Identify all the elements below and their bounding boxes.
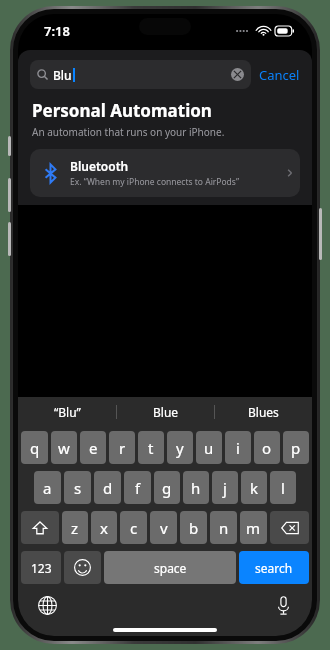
button[interactable]: Blue bbox=[117, 397, 214, 427]
staticText: d bbox=[103, 478, 113, 498]
staticText: 7:18 bbox=[44, 22, 70, 40]
button[interactable]: g bbox=[154, 471, 180, 504]
button[interactable]: h bbox=[183, 471, 209, 504]
staticText: r bbox=[119, 438, 126, 458]
button[interactable]: Cancel bbox=[251, 62, 300, 88]
staticText: g bbox=[162, 478, 172, 498]
button[interactable]: d bbox=[94, 471, 121, 504]
button[interactable]: u bbox=[196, 431, 222, 464]
staticText: Cancel bbox=[259, 66, 300, 84]
staticText: o bbox=[262, 438, 272, 458]
button[interactable]: w bbox=[51, 431, 77, 464]
button[interactable]: v bbox=[150, 511, 177, 544]
staticText: q bbox=[30, 438, 40, 458]
button[interactable]: Emoji bbox=[64, 551, 101, 584]
button[interactable]: s bbox=[64, 471, 91, 504]
staticText: Blu bbox=[53, 67, 72, 83]
button[interactable]: j bbox=[212, 471, 238, 504]
button[interactable]: “Blu” bbox=[18, 397, 116, 427]
button[interactable]: x bbox=[91, 511, 117, 544]
button[interactable]: k bbox=[241, 471, 267, 504]
button[interactable]: i bbox=[225, 431, 251, 464]
button[interactable]: Clear text bbox=[231, 68, 244, 81]
staticText: Ex. “When my iPhone connects to AirPods” bbox=[70, 176, 239, 188]
button[interactable]: Backspace bbox=[270, 511, 309, 544]
staticText: Blue bbox=[153, 404, 179, 420]
button[interactable]: a bbox=[34, 471, 61, 504]
button[interactable]: r bbox=[109, 431, 135, 464]
staticText: h bbox=[191, 478, 201, 498]
button[interactable]: space bbox=[104, 551, 236, 584]
staticText: w bbox=[58, 438, 70, 458]
button[interactable]: Bluetooth bbox=[30, 149, 300, 197]
staticText: m bbox=[246, 518, 261, 538]
button[interactable]: f bbox=[124, 471, 151, 504]
staticText: s bbox=[74, 478, 82, 498]
button[interactable]: Dictate bbox=[272, 594, 294, 616]
staticText: Bluetooth bbox=[70, 158, 129, 174]
button[interactable]: e bbox=[80, 431, 106, 464]
staticText: z bbox=[71, 518, 79, 538]
button[interactable]: q bbox=[21, 431, 48, 464]
staticText: c bbox=[130, 518, 138, 538]
staticText: a bbox=[43, 478, 52, 498]
staticText: 123 bbox=[31, 560, 52, 576]
button[interactable]: Shift bbox=[21, 511, 59, 544]
staticText: “Blu” bbox=[54, 404, 81, 420]
staticText: x bbox=[100, 518, 108, 538]
button[interactable]: n bbox=[210, 511, 237, 544]
button[interactable]: p bbox=[283, 431, 309, 464]
staticText: f bbox=[135, 478, 141, 498]
staticText: Personal Automation bbox=[32, 99, 212, 122]
button[interactable]: y bbox=[167, 431, 193, 464]
staticText: l bbox=[281, 478, 285, 498]
staticText: j bbox=[223, 478, 227, 498]
staticText: n bbox=[219, 518, 229, 538]
staticText: search bbox=[255, 560, 293, 576]
button[interactable]: t bbox=[138, 431, 164, 464]
button[interactable]: z bbox=[62, 511, 88, 544]
staticText: i bbox=[236, 438, 240, 458]
staticText: Blues bbox=[248, 404, 279, 420]
staticText: y bbox=[176, 438, 184, 458]
button[interactable]: c bbox=[120, 511, 147, 544]
staticText: p bbox=[291, 438, 301, 458]
staticText: b bbox=[189, 518, 199, 538]
button[interactable]: 123 bbox=[21, 551, 61, 584]
button[interactable]: search bbox=[239, 551, 309, 584]
staticText: u bbox=[204, 438, 214, 458]
staticText: k bbox=[250, 478, 259, 498]
staticText: e bbox=[89, 438, 98, 458]
button[interactable]: Blu bbox=[30, 60, 251, 89]
staticText: t bbox=[148, 438, 154, 458]
button[interactable]: o bbox=[254, 431, 280, 464]
staticText: v bbox=[160, 518, 168, 538]
button[interactable]: l bbox=[270, 471, 296, 504]
button[interactable]: Change keyboard language bbox=[36, 594, 58, 616]
button[interactable]: b bbox=[180, 511, 207, 544]
staticText: An automation that runs on your iPhone. bbox=[32, 125, 225, 139]
button[interactable]: Blues bbox=[215, 397, 312, 427]
staticText: space bbox=[154, 560, 187, 576]
button[interactable]: m bbox=[240, 511, 267, 544]
